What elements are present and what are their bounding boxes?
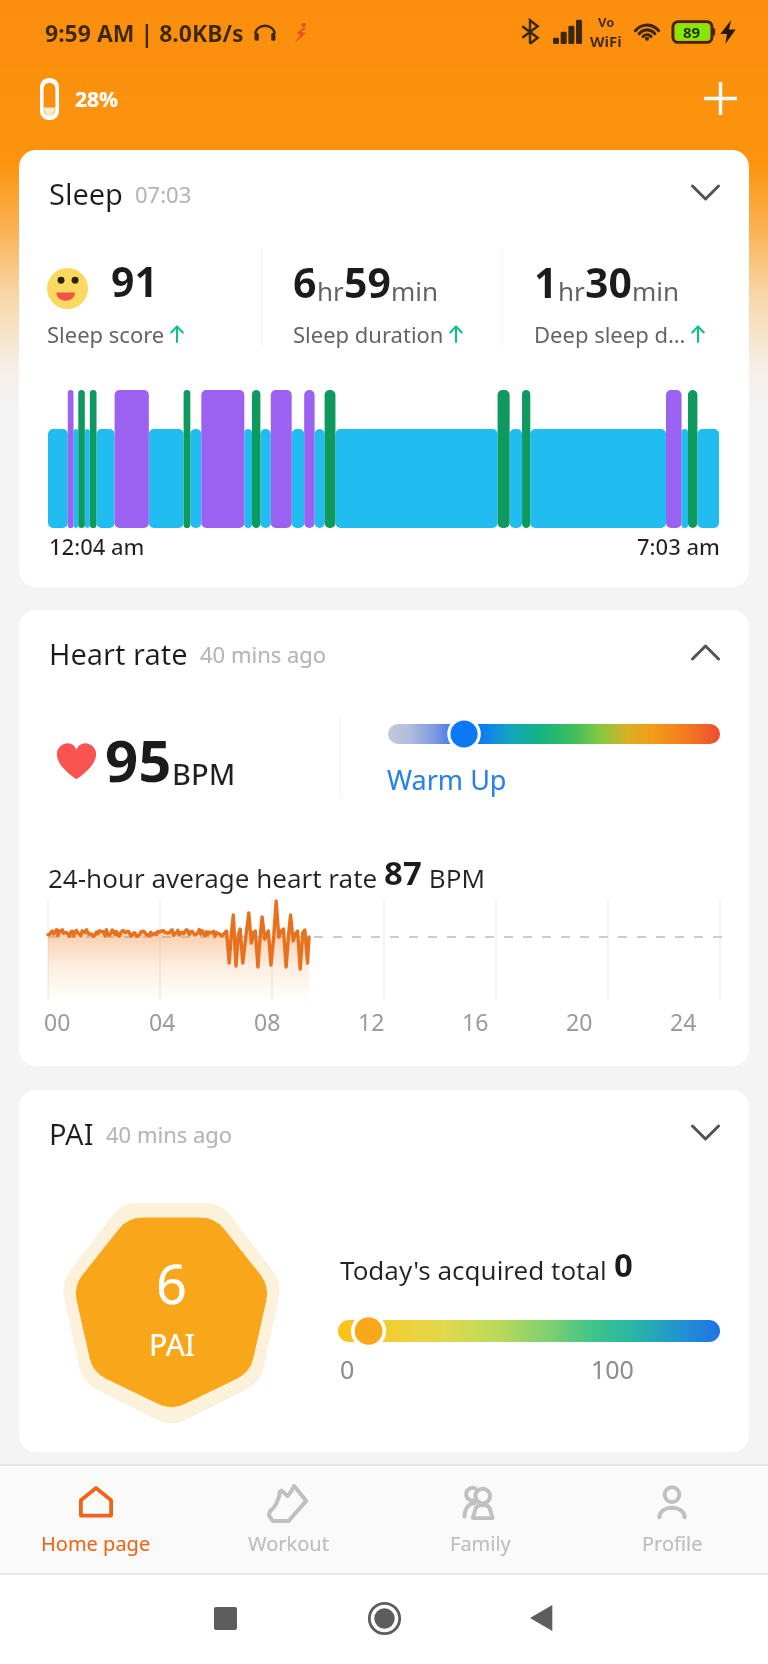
button[interactable]: Heart rate <box>19 610 749 1066</box>
staticText: 91 <box>111 253 158 309</box>
staticText: BPM <box>422 860 485 895</box>
staticText: Family <box>450 1530 511 1557</box>
button[interactable]: Expand PAI <box>677 1104 733 1160</box>
staticText: PAI <box>49 1114 94 1153</box>
staticText: Home page <box>41 1530 151 1557</box>
button[interactable]: Add device <box>690 68 750 128</box>
staticText: 1 <box>534 254 558 310</box>
staticText: 24-hour average heart rate <box>48 860 384 895</box>
staticText: min <box>632 273 680 308</box>
button[interactable]: Family <box>384 1466 576 1573</box>
staticText: 9:59 AM | 8.0KB/s <box>45 17 244 48</box>
staticText: 6 <box>156 1246 187 1320</box>
staticText: 16 <box>462 1006 489 1037</box>
staticText: hr <box>558 273 585 308</box>
staticText: 12 <box>358 1006 385 1037</box>
staticText: 08 <box>254 1006 281 1037</box>
staticText: Sleep duration <box>293 319 444 349</box>
button[interactable]: Expand sleep <box>677 164 733 220</box>
button[interactable]: Back <box>515 1592 567 1644</box>
button[interactable]: Home page <box>0 1466 192 1573</box>
staticText: 00 <box>44 1006 71 1037</box>
staticText: 6 <box>293 254 317 310</box>
staticText: WiFi <box>590 31 622 51</box>
staticText: 28% <box>75 85 118 114</box>
staticText: 89 <box>683 22 701 42</box>
button[interactable]: Workout <box>192 1466 384 1573</box>
staticText: Sleep <box>49 174 123 213</box>
staticText: 7:03 am <box>637 531 720 561</box>
staticText: 24 <box>670 1006 697 1037</box>
staticText: Vo <box>598 13 615 31</box>
staticText: 59 <box>344 254 391 310</box>
staticText: 0 <box>614 1242 633 1287</box>
staticText: 30 <box>585 254 632 310</box>
staticText: 40 mins ago <box>106 1119 233 1149</box>
button[interactable]: Sleep <box>19 150 749 587</box>
button[interactable]: PAI <box>19 1090 749 1452</box>
staticText: 07:03 <box>135 179 192 209</box>
staticText: Deep sleep d… <box>534 319 686 349</box>
staticText: Sleep score <box>47 319 165 349</box>
button[interactable]: Home <box>358 1592 410 1644</box>
button[interactable]: Collapse heart rate <box>677 624 733 680</box>
staticText: Today's acquired total <box>340 1252 614 1287</box>
staticText: Profile <box>642 1530 703 1557</box>
button[interactable]: Recents <box>199 1592 251 1644</box>
staticText: 04 <box>149 1006 176 1037</box>
staticText: Warm Up <box>387 761 507 798</box>
staticText: 40 mins ago <box>200 639 327 669</box>
button[interactable]: Profile <box>576 1466 768 1573</box>
staticText: min <box>391 273 439 308</box>
staticText: BPM <box>172 754 236 793</box>
staticText: Heart rate <box>49 634 188 673</box>
staticText: 20 <box>566 1006 593 1037</box>
staticText: 95 <box>105 720 172 799</box>
staticText: PAI <box>149 1324 195 1365</box>
staticText: 0 <box>340 1352 355 1386</box>
staticText: 100 <box>591 1352 634 1386</box>
staticText: 87 <box>384 850 422 895</box>
staticText: 12:04 am <box>49 531 145 561</box>
staticText: hr <box>317 273 344 308</box>
button[interactable]: 28% <box>40 70 118 128</box>
staticText: Workout <box>248 1530 329 1557</box>
